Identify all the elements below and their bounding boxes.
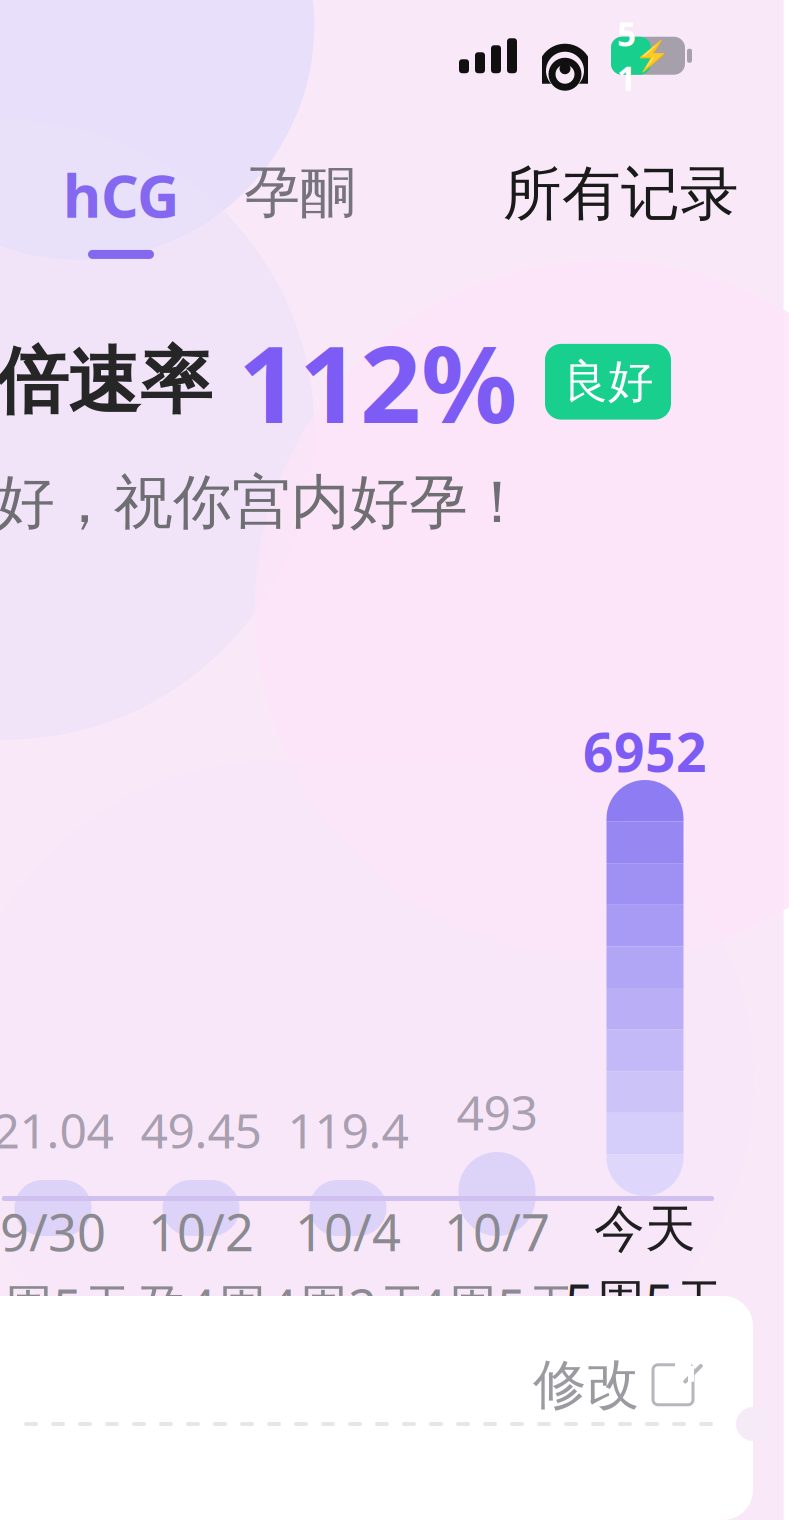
staticText: 49.45 (140, 1098, 261, 1162)
staticText: 119.4 (287, 1098, 408, 1162)
staticText: 倍速率 (0, 337, 212, 426)
button[interactable]: hCG (0, 156, 186, 259)
staticText: 51 (617, 11, 636, 100)
button[interactable]: 修改 (0, 1296, 753, 1417)
staticText: 10/2 (148, 1198, 254, 1265)
staticText: 4周5天 (417, 1273, 577, 1341)
staticText: 5周5天 (565, 1268, 725, 1335)
button[interactable]: 10/4 (258, 1198, 438, 1341)
staticText: 3周5天 (0, 1273, 133, 1341)
staticText: 修改 (533, 1352, 639, 1417)
staticText: 所有记录 (503, 158, 739, 230)
button[interactable]: 10/7 (407, 1198, 587, 1341)
staticText: 良好 (563, 354, 653, 410)
staticText: 10/4 (295, 1198, 401, 1265)
staticText: 6952 (583, 716, 707, 787)
staticText: 10/7 (444, 1198, 550, 1265)
button[interactable]: 所有记录 (503, 156, 789, 230)
staticText: 孕4周 (135, 1273, 266, 1341)
staticText: 4周2天 (268, 1273, 428, 1341)
button[interactable]: 孕酮 (186, 156, 356, 227)
staticText: 今天 (594, 1198, 696, 1260)
button[interactable]: 9/30 (0, 1198, 143, 1341)
staticText: ⚡ (634, 39, 671, 72)
staticText: 21.04 (0, 1098, 113, 1162)
staticText: 493 (456, 1080, 537, 1144)
staticText: 好，祝你宫内好孕！ (0, 467, 527, 539)
staticText: 9/30 (0, 1198, 106, 1265)
button[interactable]: 10/2 (111, 1198, 291, 1341)
staticText: hCG (63, 156, 179, 234)
staticText: 孕酮 (244, 158, 356, 227)
button[interactable]: 今天 (555, 1198, 735, 1335)
staticText: 112% (238, 311, 517, 452)
